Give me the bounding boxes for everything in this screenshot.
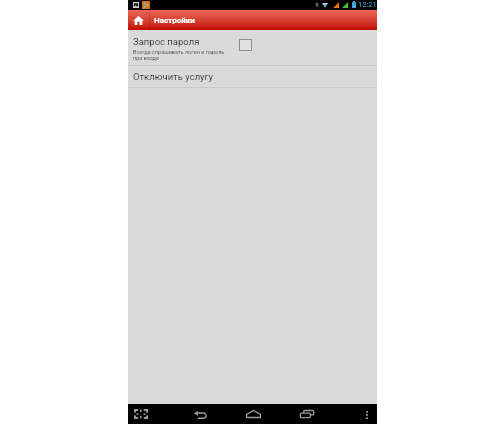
staticText: Настройки — [154, 16, 195, 25]
button[interactable]: Отключить услугу — [128, 66, 377, 87]
button[interactable]: Back — [192, 406, 208, 422]
staticText: Всегда спрашивать логин и пароль при вхо… — [133, 49, 225, 61]
button[interactable]: Home — [245, 406, 261, 422]
staticText: 12:21 — [358, 0, 377, 9]
button[interactable] — [128, 30, 377, 65]
button[interactable]: Fullscreen — [133, 406, 149, 422]
staticText: Отключить услугу — [133, 71, 214, 82]
button[interactable]: Home — [128, 10, 149, 30]
staticText: Запрос пароля — [133, 36, 200, 47]
button[interactable]: Запрос пароля — [237, 37, 253, 53]
button[interactable]: Recent apps — [299, 406, 315, 422]
button[interactable]: More options — [361, 409, 373, 421]
